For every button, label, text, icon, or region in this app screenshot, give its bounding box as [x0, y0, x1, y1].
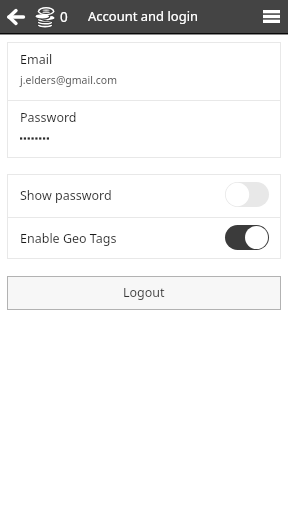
button[interactable]: Enable Geo Tags: [7, 218, 281, 259]
button[interactable]: Menu: [254, 0, 288, 33]
staticText: Logout: [123, 284, 165, 301]
staticText: 0: [60, 8, 68, 26]
staticText: Show password: [20, 187, 112, 204]
staticText: Email: [20, 51, 53, 68]
staticText: j.elders@gmail.com: [20, 73, 117, 87]
staticText: Enable Geo Tags: [20, 230, 117, 247]
button[interactable]: Logout: [7, 276, 281, 310]
button[interactable]: Password: [7, 101, 281, 158]
button[interactable]: Show password: [7, 174, 281, 217]
button[interactable]: Back: [0, 0, 32, 33]
staticText: Password: [20, 109, 77, 126]
staticText: Account and login: [88, 7, 199, 25]
button[interactable]: Coins: [35, 0, 57, 33]
button[interactable]: Email: [7, 42, 281, 100]
